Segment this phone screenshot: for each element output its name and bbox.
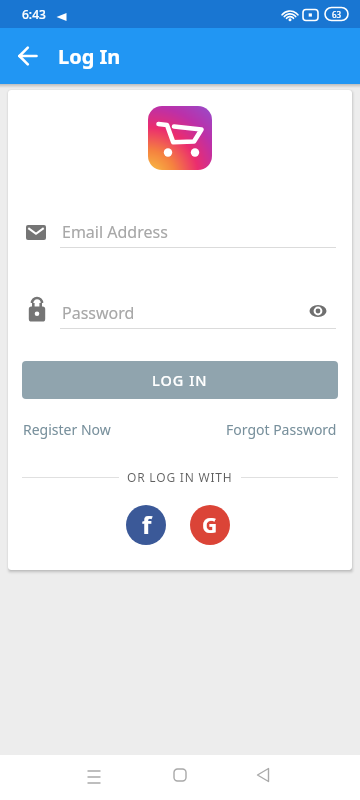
staticText: 6:43 (22, 6, 46, 22)
staticText: Register Now (23, 420, 111, 439)
button[interactable] (239, 755, 287, 800)
button[interactable] (306, 301, 330, 321)
staticText: f (142, 508, 152, 541)
button[interactable]: Email Address (22, 216, 338, 248)
button[interactable]: LOG IN (22, 361, 338, 399)
button[interactable]: Register Now (23, 420, 111, 439)
button[interactable] (13, 41, 43, 71)
staticText: OR LOG IN WITH (127, 469, 233, 485)
staticText: Email Address (62, 221, 168, 243)
button[interactable] (70, 755, 118, 800)
button[interactable]: f (126, 505, 166, 545)
staticText: Password (62, 302, 135, 324)
staticText: LOG IN (152, 370, 208, 390)
button[interactable]: Forgot Password (226, 420, 337, 439)
staticText: Forgot Password (226, 420, 337, 439)
button[interactable] (156, 755, 204, 800)
button[interactable]: G (190, 505, 230, 545)
staticText: G (202, 511, 218, 540)
staticText: 63 (332, 9, 342, 20)
staticText: Log In (58, 43, 121, 70)
button[interactable]: Password (22, 296, 338, 330)
